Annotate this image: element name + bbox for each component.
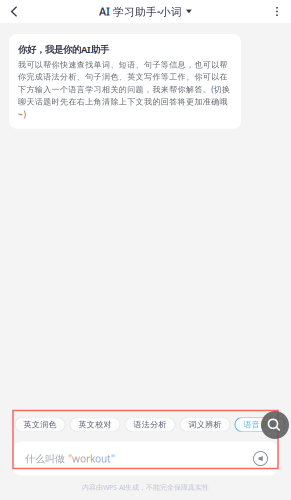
- button[interactable]: Back: [2, 0, 26, 23]
- staticText: 英文润色: [23, 419, 57, 430]
- staticText: AI 学习助手-小词: [99, 4, 182, 19]
- staticText: 内容由WPS AI生成，不能完全保障真实性: [82, 483, 209, 492]
- staticText: 我可以帮你快速查找单词、短语、句子等信息，也可以帮你完成语法分析、句子润色、英文…: [18, 60, 230, 120]
- button[interactable]: 语法分析: [125, 418, 175, 432]
- button[interactable]: AI 学习助手-小词: [99, 0, 192, 23]
- button[interactable]: Voice input: [253, 451, 268, 466]
- button[interactable]: 英文润色: [15, 418, 65, 432]
- staticText: 你好，我是你的AI助手: [18, 43, 109, 56]
- button[interactable]: 词义辨析: [180, 418, 230, 432]
- staticText: 词义辨析: [188, 419, 222, 430]
- button[interactable]: 语音面试: [235, 418, 285, 432]
- button[interactable]: 英文校对: [70, 418, 120, 432]
- staticText: 语法分析: [133, 419, 167, 430]
- staticText: 英文校对: [78, 419, 112, 430]
- button[interactable]: More options: [265, 0, 289, 23]
- staticText: 什么叫做 "workout": [25, 452, 115, 465]
- staticText: 语音面试: [243, 419, 277, 430]
